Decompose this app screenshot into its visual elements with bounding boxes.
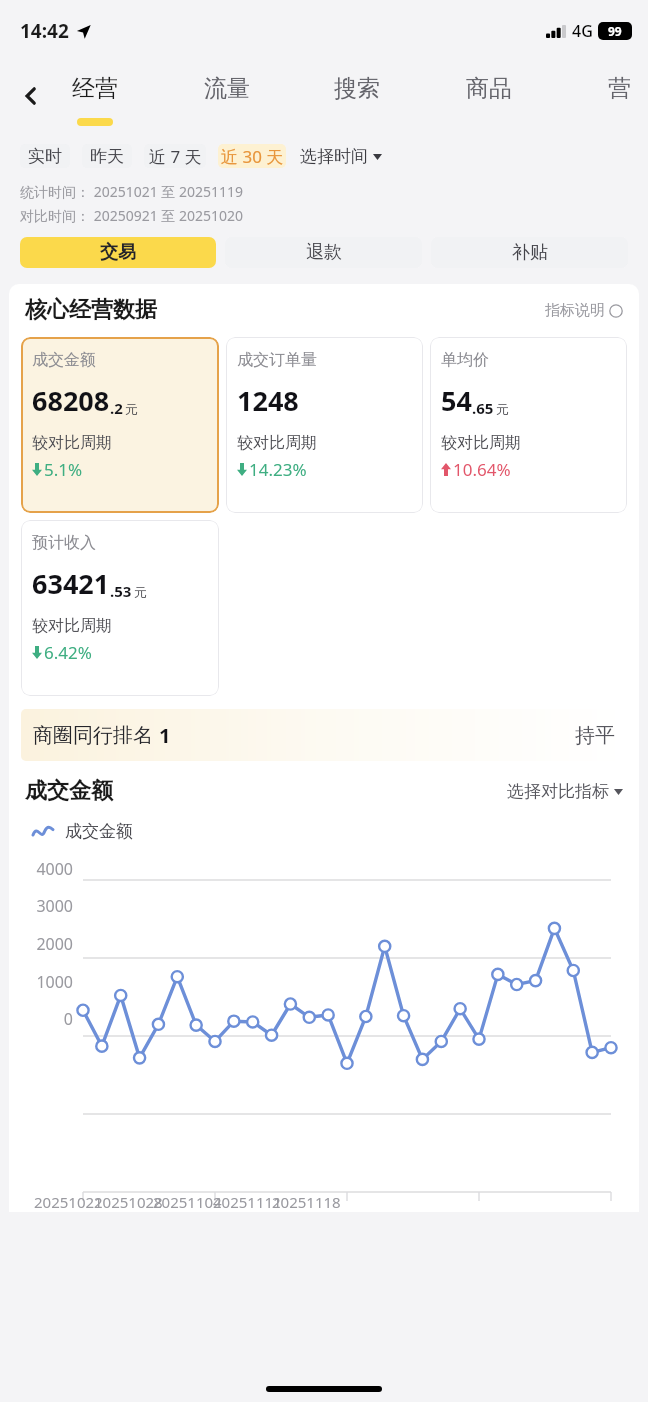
staticText: .53 bbox=[110, 581, 132, 601]
staticText: 20251104 bbox=[153, 1192, 222, 1212]
staticText: 20251021 bbox=[34, 1192, 103, 1212]
button[interactable]: 近 7 天 bbox=[144, 144, 206, 168]
staticText: 54 bbox=[441, 382, 472, 419]
button[interactable]: Back bbox=[14, 79, 48, 113]
staticText: 实时 bbox=[28, 146, 62, 167]
staticText: 较对比周期 bbox=[441, 433, 521, 453]
button[interactable]: 搜索 bbox=[321, 74, 393, 118]
staticText: 单均价 bbox=[441, 350, 489, 370]
button[interactable]: 成交订单量 bbox=[226, 337, 423, 513]
staticText: 14:42 bbox=[20, 18, 69, 44]
staticText: 68208 bbox=[32, 382, 110, 419]
staticText: 20251118 bbox=[272, 1192, 341, 1212]
staticText: 较对比周期 bbox=[32, 616, 112, 636]
staticText: 统计时间： 20251021 至 20251119 bbox=[20, 182, 244, 201]
button[interactable]: 成交金额 bbox=[21, 337, 219, 513]
staticText: 14.23% bbox=[249, 458, 307, 481]
staticText: 流量 bbox=[204, 74, 250, 103]
staticText: 20251028 bbox=[94, 1192, 163, 1212]
staticText: 0 bbox=[63, 1008, 73, 1030]
button[interactable]: 商圈同行排名 bbox=[21, 709, 627, 761]
staticText: 近 30 天 bbox=[221, 145, 284, 168]
staticText: 选择对比指标 bbox=[507, 781, 609, 802]
staticText: 元 bbox=[125, 401, 138, 417]
staticText: 近 7 天 bbox=[149, 145, 202, 168]
button[interactable]: 经营 bbox=[59, 74, 131, 118]
staticText: 成交金额 bbox=[65, 821, 133, 842]
staticText: 99 bbox=[608, 23, 622, 39]
staticText: 10.64% bbox=[453, 458, 511, 481]
staticText: 成交订单量 bbox=[237, 350, 317, 370]
button[interactable]: 近 30 天 bbox=[218, 144, 286, 168]
button[interactable]: 营 bbox=[583, 74, 648, 118]
button[interactable]: 预计收入 bbox=[21, 520, 219, 696]
staticText: 成交金额 bbox=[25, 777, 113, 805]
staticText: 持平 bbox=[575, 723, 615, 748]
staticText: 2000 bbox=[36, 933, 73, 955]
staticText: 退款 bbox=[306, 241, 342, 264]
button[interactable]: 昨天 bbox=[82, 144, 132, 168]
staticText: 选择时间 bbox=[300, 146, 368, 167]
staticText: 1 bbox=[159, 722, 171, 749]
button[interactable]: 选择对比指标 bbox=[507, 781, 623, 802]
staticText: 5.1% bbox=[44, 458, 83, 481]
staticText: 成交金额 bbox=[32, 350, 96, 370]
button[interactable]: 实时 bbox=[20, 144, 70, 168]
staticText: 补贴 bbox=[512, 241, 548, 264]
staticText: 4000 bbox=[36, 858, 73, 880]
staticText: 商圈同行排名 bbox=[33, 723, 153, 748]
staticText: 1248 bbox=[237, 382, 299, 419]
staticText: 交易 bbox=[100, 241, 136, 264]
staticText: 营 bbox=[608, 74, 631, 103]
staticText: 元 bbox=[134, 584, 147, 600]
staticText: .65 bbox=[472, 398, 494, 418]
staticText: 预计收入 bbox=[32, 533, 96, 553]
staticText: 搜索 bbox=[334, 74, 380, 103]
staticText: 商品 bbox=[466, 74, 512, 103]
staticText: 6.42% bbox=[44, 641, 92, 664]
button[interactable]: 指标说明 bbox=[545, 301, 623, 320]
staticText: .2 bbox=[110, 398, 123, 418]
staticText: 20251111 bbox=[213, 1192, 282, 1212]
staticText: 指标说明 bbox=[545, 301, 605, 320]
staticText: 较对比周期 bbox=[237, 433, 317, 453]
staticText: 4G bbox=[572, 20, 593, 42]
staticText: 63421 bbox=[32, 565, 110, 602]
button[interactable]: 退款 bbox=[225, 237, 422, 268]
button[interactable]: 补贴 bbox=[431, 237, 628, 268]
staticText: 元 bbox=[496, 401, 509, 417]
staticText: 1000 bbox=[36, 971, 73, 993]
staticText: 对比时间： 20250921 至 20251020 bbox=[20, 206, 244, 225]
button[interactable]: 选择时间 bbox=[300, 146, 382, 167]
staticText: 经营 bbox=[72, 74, 118, 103]
staticText: 核心经营数据 bbox=[25, 296, 157, 324]
button[interactable]: 流量 bbox=[191, 74, 263, 118]
button[interactable]: 交易 bbox=[20, 237, 216, 268]
button[interactable]: 单均价 bbox=[430, 337, 627, 513]
staticText: 3000 bbox=[36, 895, 73, 917]
staticText: 较对比周期 bbox=[32, 433, 112, 453]
staticText: 昨天 bbox=[90, 146, 124, 167]
button[interactable]: 商品 bbox=[453, 74, 525, 118]
